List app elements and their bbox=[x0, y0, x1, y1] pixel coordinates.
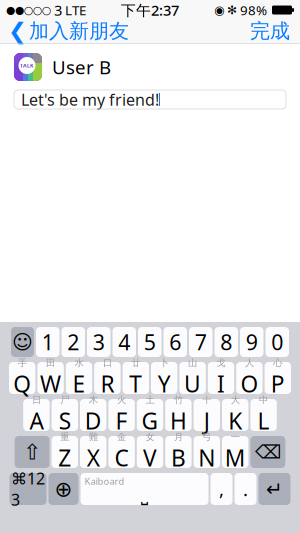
staticText: R bbox=[100, 369, 114, 399]
button[interactable]: 戈 bbox=[208, 362, 234, 394]
button[interactable]: 月 bbox=[165, 436, 192, 468]
staticText: ⇧ bbox=[23, 440, 41, 464]
staticText: LTE bbox=[65, 1, 86, 19]
staticText: Y bbox=[158, 369, 171, 399]
staticText: X bbox=[87, 443, 100, 473]
button[interactable]: 大 bbox=[222, 399, 248, 431]
staticText: 月 bbox=[174, 431, 183, 443]
button[interactable]: 5 bbox=[138, 327, 161, 357]
button[interactable]: 1 bbox=[36, 327, 59, 357]
button[interactable]: 人 bbox=[236, 362, 263, 394]
staticText: J bbox=[204, 406, 210, 436]
staticText: M bbox=[225, 443, 246, 473]
staticText: 7 bbox=[195, 328, 207, 356]
staticText: 口 bbox=[103, 357, 112, 369]
staticText: D bbox=[85, 406, 102, 436]
button[interactable]: 0 bbox=[265, 327, 289, 357]
staticText: 金 bbox=[117, 431, 126, 443]
staticText: 98% bbox=[240, 1, 267, 19]
staticText: F bbox=[116, 406, 128, 436]
button[interactable]: 弓 bbox=[194, 436, 220, 468]
staticText: ⎵ bbox=[141, 487, 148, 504]
staticText: G bbox=[141, 406, 158, 436]
button[interactable]: 4 bbox=[112, 327, 136, 357]
staticText: S bbox=[59, 406, 71, 436]
staticText: Kaiboard bbox=[84, 475, 124, 487]
staticText: K bbox=[228, 406, 242, 436]
staticText: , bbox=[219, 477, 224, 501]
button[interactable]: 廿 bbox=[123, 362, 149, 394]
button[interactable]: 2 bbox=[61, 327, 85, 357]
button[interactable]: 手 bbox=[9, 362, 35, 394]
button[interactable]: ⊕ bbox=[48, 473, 78, 505]
staticText: 大 bbox=[231, 394, 240, 406]
staticText: 難 bbox=[89, 431, 98, 443]
staticText: 人 bbox=[245, 357, 254, 369]
staticText: E bbox=[72, 369, 85, 399]
staticText: ↵ bbox=[266, 478, 283, 500]
staticText: ●●○○○ bbox=[6, 4, 51, 16]
staticText: Q bbox=[13, 369, 31, 399]
button[interactable]: 9 bbox=[240, 327, 263, 357]
button[interactable]: ⇧ bbox=[15, 436, 50, 468]
button[interactable]: 山 bbox=[179, 362, 206, 394]
button[interactable]: 竹 bbox=[165, 399, 192, 431]
button[interactable]: 重 bbox=[52, 436, 78, 468]
staticText: 下午2:37 bbox=[121, 0, 179, 20]
staticText: TALK bbox=[20, 62, 34, 69]
staticText: A bbox=[29, 406, 43, 436]
staticText: T bbox=[129, 369, 142, 399]
button[interactable]: 6 bbox=[163, 327, 187, 357]
button[interactable]: 田 bbox=[37, 362, 64, 394]
staticText: 山 bbox=[188, 357, 197, 369]
button[interactable]: ☺ bbox=[11, 327, 34, 357]
button[interactable]: ↵ bbox=[258, 473, 290, 505]
button[interactable]: 口 bbox=[94, 362, 121, 394]
button[interactable]: 日 bbox=[23, 399, 50, 431]
staticText: O bbox=[240, 369, 258, 399]
staticText: ⌫ bbox=[255, 441, 281, 463]
staticText: 5 bbox=[144, 328, 156, 356]
staticText: 日 bbox=[32, 394, 41, 406]
button[interactable]: 心 bbox=[265, 362, 291, 394]
button[interactable]: 尸 bbox=[52, 399, 78, 431]
staticText: 十 bbox=[202, 394, 211, 406]
button[interactable]: 土 bbox=[137, 399, 163, 431]
button[interactable]: 3 bbox=[87, 327, 110, 357]
button[interactable]: 水 bbox=[66, 362, 92, 394]
button[interactable]: 一 bbox=[222, 436, 248, 468]
button[interactable]: 金 bbox=[108, 436, 135, 468]
button[interactable]: ❮ bbox=[0, 14, 129, 48]
staticText: ❮ bbox=[8, 18, 27, 44]
button[interactable]: ⌘123 bbox=[9, 473, 46, 505]
button[interactable]: 完成 bbox=[250, 15, 300, 47]
button[interactable]: 7 bbox=[189, 327, 212, 357]
staticText: 9 bbox=[246, 328, 258, 356]
staticText: 弓 bbox=[202, 431, 211, 443]
button[interactable]: , bbox=[210, 473, 232, 505]
staticText: W bbox=[40, 369, 61, 399]
staticText: 重 bbox=[60, 431, 69, 443]
button[interactable]: 火 bbox=[108, 399, 135, 431]
staticText: ✻ bbox=[227, 3, 237, 17]
button[interactable]: 8 bbox=[214, 327, 238, 357]
staticText: 竹 bbox=[174, 394, 183, 406]
button[interactable]: 木 bbox=[80, 399, 106, 431]
staticText: H bbox=[170, 406, 187, 436]
button[interactable]: 卜 bbox=[151, 362, 177, 394]
staticText: 女 bbox=[145, 431, 154, 443]
staticText: 3 bbox=[54, 0, 62, 20]
staticText: User B bbox=[52, 55, 111, 79]
button[interactable]: . bbox=[234, 473, 256, 505]
staticText: . bbox=[243, 477, 248, 501]
staticText: P bbox=[271, 369, 285, 399]
staticText: I bbox=[217, 369, 225, 399]
button[interactable]: 十 bbox=[194, 399, 220, 431]
staticText: Let's be my friend! bbox=[21, 89, 159, 110]
button[interactable]: 女 bbox=[137, 436, 163, 468]
button[interactable]: Kaiboard bbox=[80, 473, 208, 505]
button[interactable]: 中 bbox=[250, 399, 277, 431]
button[interactable]: ⌫ bbox=[250, 436, 285, 468]
staticText: 手 bbox=[18, 357, 27, 369]
button[interactable]: 難 bbox=[80, 436, 106, 468]
